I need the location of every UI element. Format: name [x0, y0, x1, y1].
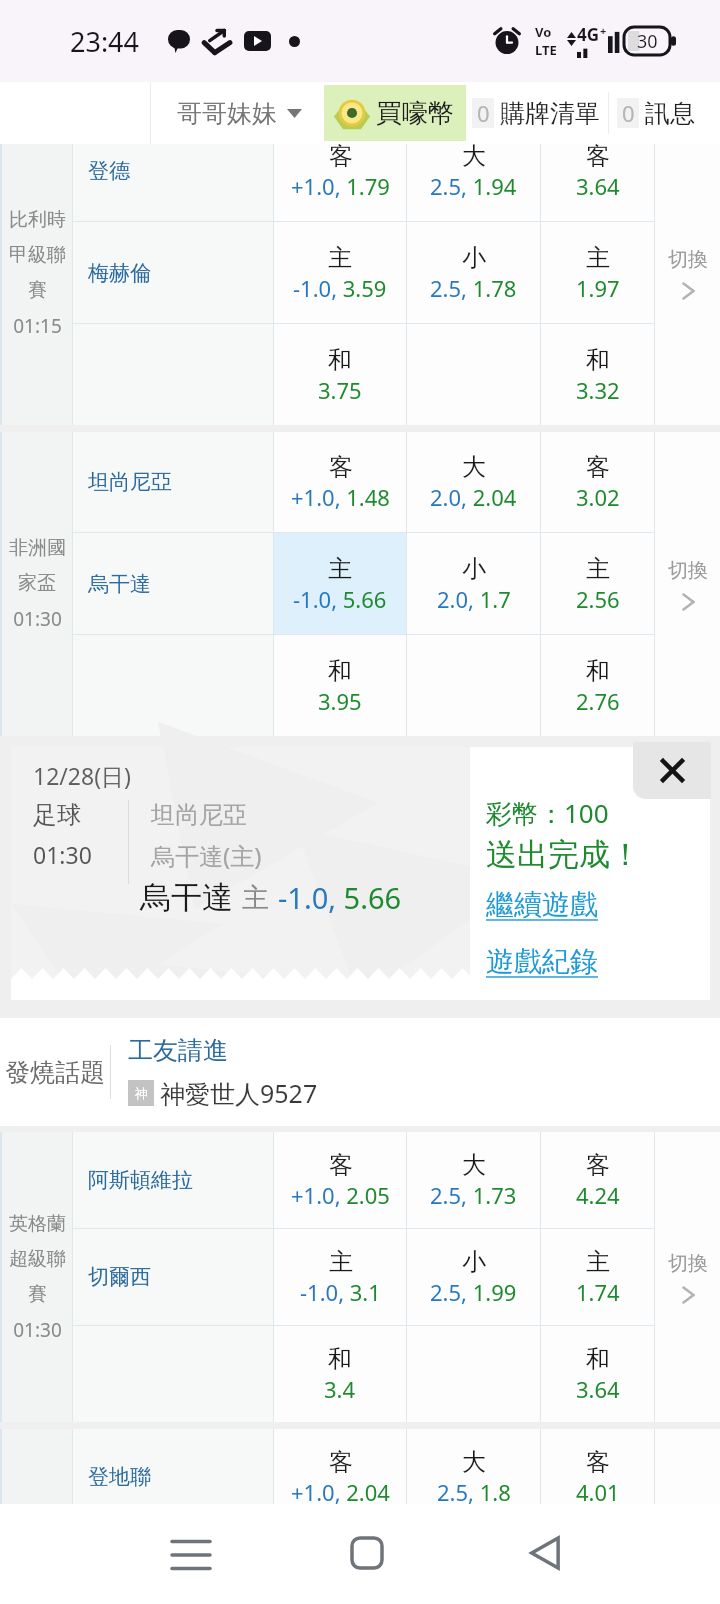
staticText: +1.0, 1.48 — [291, 482, 390, 512]
button[interactable]: 主 — [541, 222, 654, 323]
staticText: 3.75 — [318, 375, 362, 405]
button[interactable]: 小 — [407, 222, 540, 323]
staticText: 大 — [462, 144, 486, 171]
button[interactable]: 和 — [274, 1326, 406, 1422]
staticText: 3.64 — [576, 1374, 620, 1404]
staticText: 客 — [329, 144, 353, 171]
button[interactable]: 小 — [407, 1229, 540, 1325]
button[interactable]: 主 — [541, 533, 654, 634]
button[interactable]: 0 — [615, 82, 697, 144]
button[interactable]: 大 — [407, 144, 540, 221]
staticText: 2.56 — [576, 584, 620, 614]
staticText: 烏干達(主) — [151, 839, 262, 872]
staticText: 23:44 — [70, 23, 140, 60]
staticText: 4.01 — [576, 1477, 620, 1504]
staticText: 登地聯 — [88, 1464, 151, 1490]
button[interactable]: 哥哥妹妹 — [151, 82, 308, 144]
button[interactable]: 主 — [274, 1229, 406, 1325]
staticText: 小 — [462, 554, 486, 584]
button[interactable]: 切換 — [655, 144, 720, 425]
button[interactable]: 切換 — [655, 432, 720, 736]
button[interactable]: 和 — [541, 324, 654, 425]
button[interactable]: 小 — [407, 533, 540, 634]
staticText: 2.5, 1.94 — [430, 171, 517, 201]
staticText: 2.76 — [576, 686, 620, 716]
button[interactable]: 大 — [407, 432, 540, 532]
staticText: 主 — [586, 1247, 610, 1277]
button[interactable]: 客 — [274, 1132, 406, 1228]
button[interactable]: 主 — [541, 1229, 654, 1325]
staticText: 繼續遊戲 — [486, 887, 598, 922]
button[interactable]: 和 — [274, 635, 406, 736]
staticText: LTE — [535, 41, 557, 59]
staticText: +1.0, 1.79 — [291, 171, 390, 201]
staticText: 烏干達 — [140, 878, 233, 917]
staticText: 坦尚尼亞 — [88, 469, 172, 495]
staticText: 3.4 — [324, 1374, 356, 1404]
staticText: 烏干達 — [88, 571, 151, 597]
staticText: Vo — [535, 23, 552, 41]
button[interactable]: 主 — [274, 533, 406, 634]
staticText: + — [600, 23, 607, 38]
button[interactable]: 客 — [274, 432, 406, 532]
staticText: 01:30 — [13, 1317, 62, 1343]
staticText: 和 — [328, 345, 352, 375]
staticText: 客 — [586, 452, 610, 482]
button[interactable]: 0 — [470, 82, 602, 144]
staticText: 哥哥妹妹 — [177, 98, 277, 129]
staticText: 3.64 — [576, 171, 620, 201]
staticText: -1.0, 5.66 — [293, 584, 387, 614]
staticText: 主 — [586, 243, 610, 273]
button[interactable]: 切換 — [655, 1132, 720, 1422]
staticText: 12/28(日) — [33, 760, 131, 791]
button[interactable]: 主 — [274, 222, 406, 323]
staticText: 切換 — [668, 247, 708, 272]
staticText: 購牌清單 — [500, 98, 600, 129]
staticText: 非洲國 — [9, 536, 66, 560]
button[interactable]: Back — [504, 1513, 584, 1593]
staticText: 30 — [637, 29, 658, 54]
button[interactable]: 客 — [541, 1132, 654, 1228]
button[interactable]: 發燒話題 — [0, 1018, 720, 1126]
staticText: 和 — [586, 345, 610, 375]
staticText: 遊戲紀錄 — [486, 944, 598, 979]
button[interactable]: 客 — [541, 1429, 654, 1504]
button[interactable]: 買嚎幣 — [324, 85, 466, 141]
staticText: 01:15 — [13, 313, 62, 339]
staticText: 彩幣：100 — [486, 795, 609, 831]
staticText: 超級聯 — [9, 1247, 66, 1271]
staticText: 4.24 — [576, 1180, 620, 1210]
staticText: 大 — [462, 452, 486, 482]
button[interactable]: 客 — [274, 144, 406, 221]
button[interactable]: Recent apps — [151, 1513, 231, 1593]
button[interactable]: 大 — [407, 1429, 540, 1504]
button[interactable]: 客 — [274, 1429, 406, 1504]
button[interactable]: 大 — [407, 1132, 540, 1228]
button[interactable]: 遊戲紀錄 — [486, 944, 598, 979]
button[interactable]: 客 — [541, 144, 654, 221]
button[interactable]: 和 — [274, 324, 406, 425]
staticText: 2.5, 1.73 — [430, 1180, 517, 1210]
button[interactable]: Home — [327, 1513, 407, 1593]
staticText: 01:30 — [33, 839, 92, 870]
button[interactable]: Close — [633, 742, 711, 799]
staticText: 切爾西 — [88, 1264, 151, 1290]
staticText: +1.0, 2.05 — [291, 1180, 390, 1210]
button[interactable]: 和 — [541, 1326, 654, 1422]
staticText: 小 — [462, 243, 486, 273]
staticText: 訊息 — [645, 98, 695, 129]
staticText: 發燒話題 — [5, 1057, 105, 1088]
staticText: 和 — [586, 1344, 610, 1374]
staticText: 2.0, 1.7 — [437, 584, 511, 614]
staticText: 送出完成！ — [486, 835, 641, 874]
staticText: 客 — [586, 144, 610, 171]
staticText: 客 — [329, 1150, 353, 1180]
button[interactable]: 繼續遊戲 — [486, 887, 598, 922]
button[interactable]: 和 — [541, 635, 654, 736]
button[interactable]: 客 — [541, 432, 654, 532]
staticText: -1.0, 3.1 — [300, 1277, 381, 1307]
